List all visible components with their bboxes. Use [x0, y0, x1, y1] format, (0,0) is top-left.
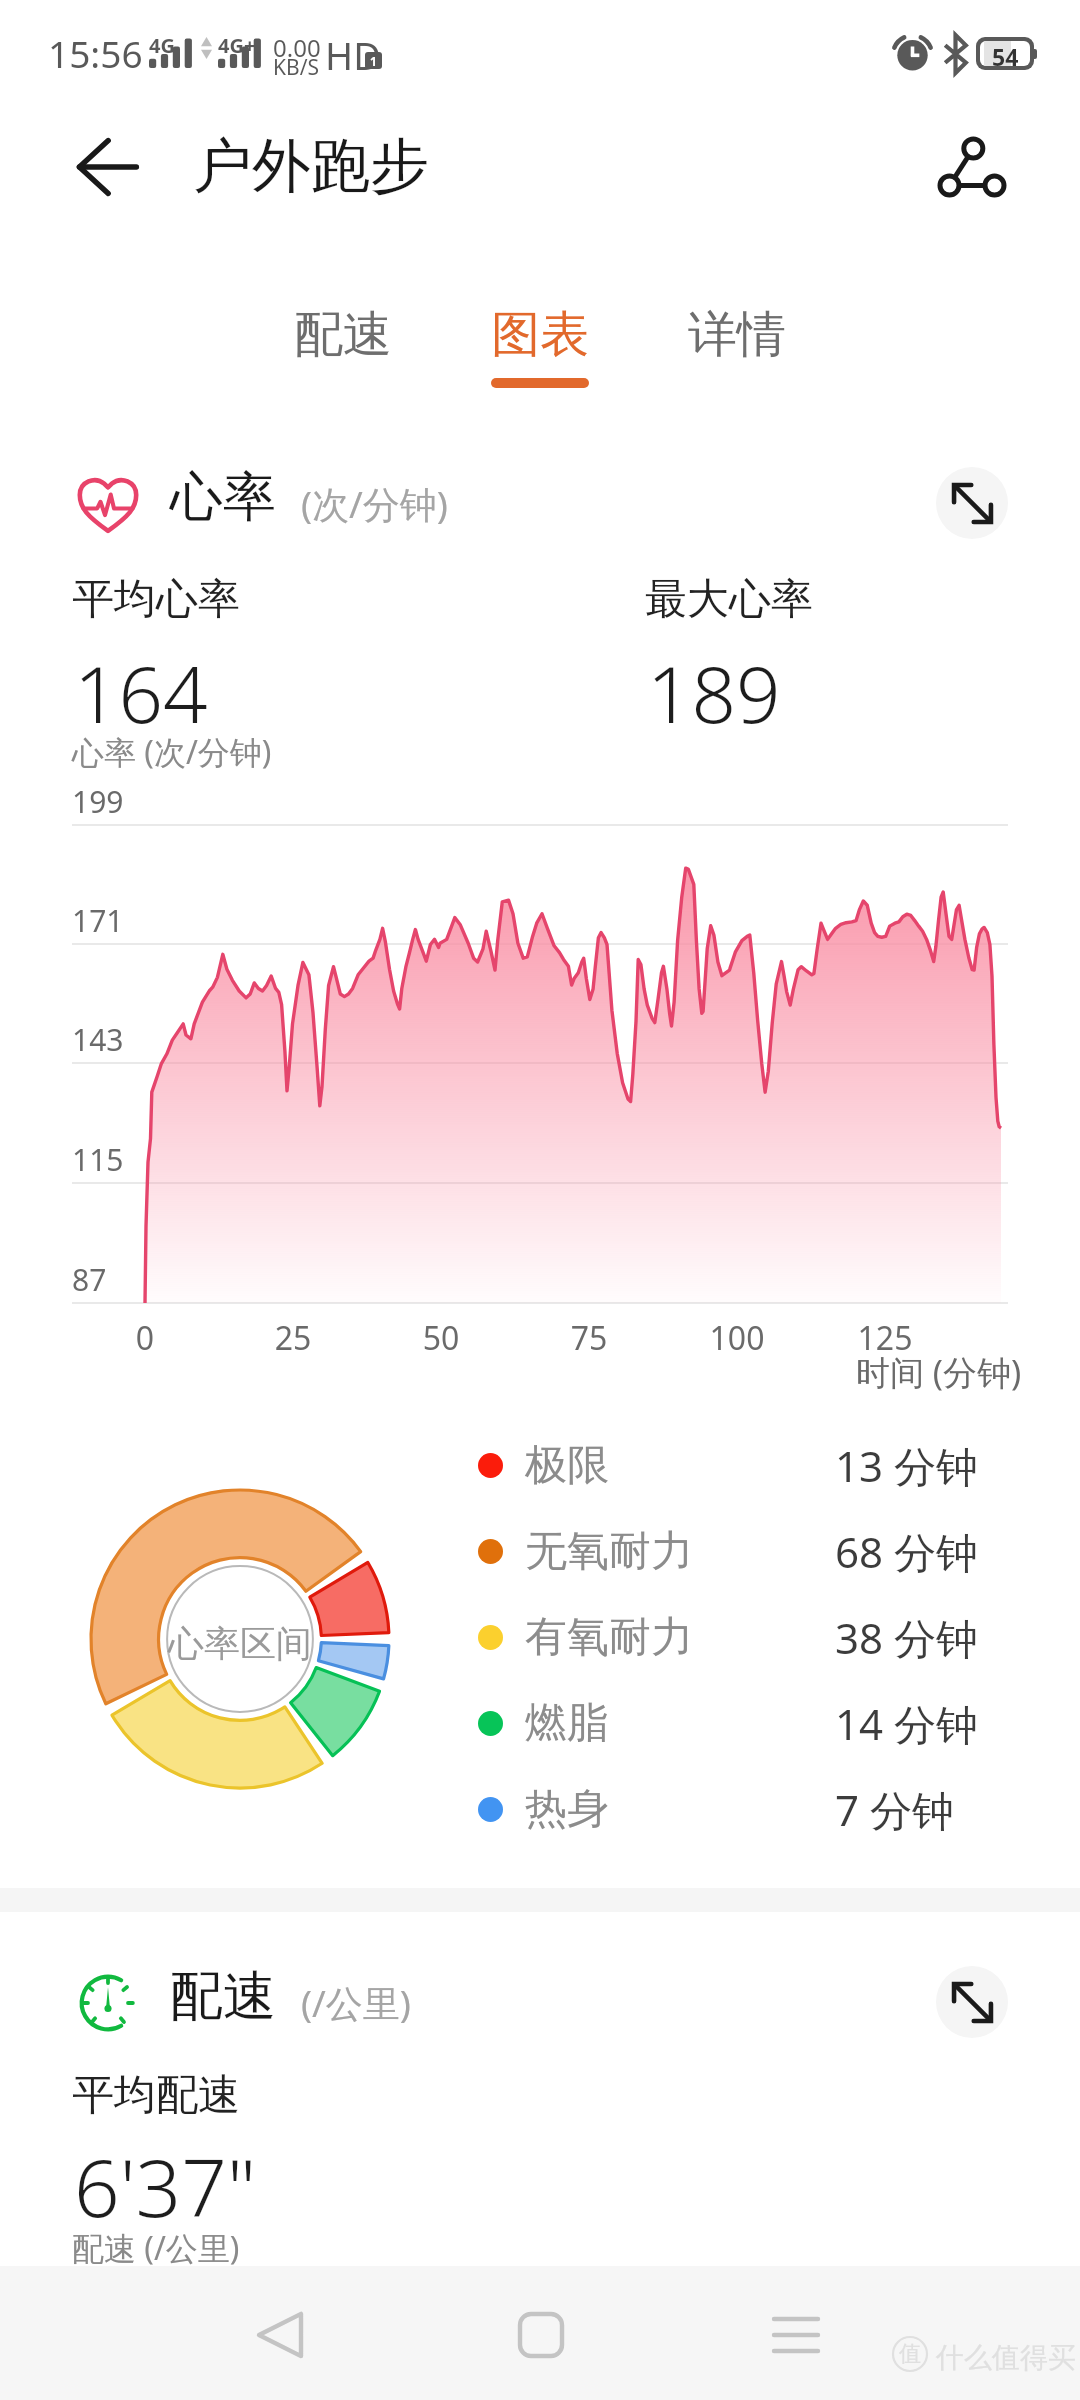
- button[interactable]: Back: [58, 118, 156, 216]
- button[interactable]: Heart rate zones: [91, 1490, 389, 1788]
- staticText: 1: [370, 53, 377, 69]
- staticText: 0.00: [273, 31, 321, 64]
- staticText: 配速: [294, 304, 392, 366]
- button[interactable]: 图表: [465, 304, 615, 408]
- staticText: 164: [74, 640, 208, 746]
- button[interactable]: 热身: [478, 1766, 1038, 1852]
- staticText: 心率 (次/分钟): [72, 730, 272, 774]
- staticText: 平均心率: [72, 573, 240, 626]
- staticText: 平均配速: [72, 2069, 240, 2122]
- staticText: 13 分钟: [835, 1437, 978, 1494]
- staticText: 87: [72, 1259, 107, 1300]
- staticText: 38 分钟: [835, 1609, 978, 1666]
- staticText: 15:56: [48, 28, 143, 78]
- button[interactable]: Expand: [936, 1966, 1008, 2038]
- staticText: 143: [72, 1019, 124, 1060]
- button[interactable]: 燃脂: [478, 1680, 1038, 1766]
- staticText: 心率: [170, 464, 276, 531]
- staticText: 4G+: [218, 32, 256, 59]
- staticText: 199: [72, 781, 124, 822]
- staticText: 无氧耐力: [525, 1525, 693, 1578]
- staticText: 25: [253, 1316, 333, 1360]
- staticText: 115: [72, 1139, 124, 1180]
- staticText: 极限: [525, 1439, 609, 1492]
- staticText: 有氧耐力: [525, 1611, 693, 1664]
- staticText: 最大心率: [645, 573, 813, 626]
- staticText: 热身: [525, 1783, 609, 1836]
- staticText: (次/分钟): [301, 478, 448, 529]
- staticText: 图表: [491, 304, 589, 366]
- button[interactable]: Share: [922, 117, 1022, 217]
- button[interactable]: Home: [499, 2293, 583, 2377]
- staticText: 户外跑步: [193, 129, 429, 203]
- button[interactable]: Expand: [936, 467, 1008, 539]
- button[interactable]: 无氧耐力: [478, 1508, 1038, 1594]
- staticText: (/公里): [301, 1977, 411, 2028]
- button[interactable]: Back: [238, 2293, 322, 2377]
- button[interactable]: 详情: [662, 304, 812, 408]
- button[interactable]: Recent apps: [754, 2293, 838, 2377]
- staticText: 心率区间: [168, 1621, 312, 1666]
- staticText: 189: [647, 640, 781, 746]
- staticText: 54: [992, 41, 1019, 66]
- button[interactable]: 配速: [268, 304, 418, 408]
- staticText: KB/S: [273, 53, 319, 82]
- staticText: 125: [845, 1316, 925, 1360]
- button[interactable]: 极限: [478, 1422, 1038, 1508]
- staticText: 100: [697, 1316, 777, 1360]
- staticText: 配速: [170, 1963, 276, 2030]
- staticText: 时间 (分钟): [856, 1349, 1022, 1395]
- staticText: 4G: [149, 32, 175, 59]
- staticText: 什么值得买: [936, 2340, 1076, 2375]
- staticText: 值: [899, 2340, 921, 2368]
- staticText: 0: [105, 1316, 185, 1360]
- staticText: 171: [72, 900, 124, 941]
- staticText: HD: [325, 29, 381, 81]
- staticText: 68 分钟: [835, 1523, 978, 1580]
- staticText: 7 分钟: [835, 1781, 954, 1838]
- staticText: 详情: [688, 304, 786, 366]
- staticText: 燃脂: [525, 1697, 609, 1750]
- staticText: 6'37": [74, 2131, 256, 2240]
- staticText: 50: [401, 1316, 481, 1360]
- staticText: 配速 (/公里): [72, 2226, 240, 2270]
- button[interactable]: 有氧耐力: [478, 1594, 1038, 1680]
- staticText: 14 分钟: [835, 1695, 978, 1752]
- staticText: 75: [549, 1316, 629, 1360]
